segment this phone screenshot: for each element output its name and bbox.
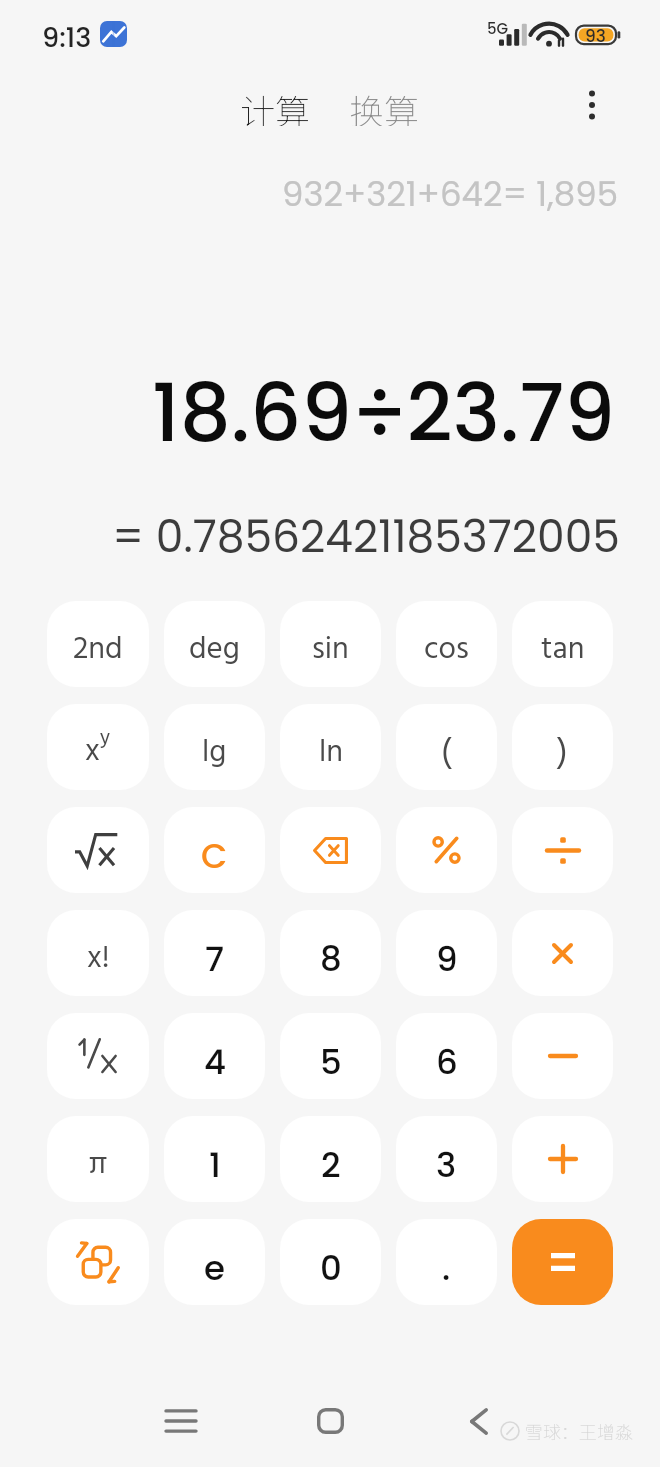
staticText: π: [89, 1140, 108, 1190]
button[interactable]: Square root: [47, 807, 149, 893]
button[interactable]: 6: [396, 1013, 497, 1099]
button[interactable]: Random: [47, 1219, 149, 1305]
button[interactable]: 9: [396, 910, 497, 996]
button[interactable]: 计算: [235, 76, 316, 134]
button[interactable]: More options: [568, 81, 616, 129]
staticText: (: [441, 726, 452, 780]
staticText: 1: [209, 1141, 221, 1189]
button[interactable]: Multiply: [512, 910, 613, 996]
staticText: 2nd: [73, 625, 123, 675]
staticText: 93: [585, 24, 606, 48]
button[interactable]: ): [512, 704, 613, 790]
button[interactable]: cos: [396, 601, 497, 687]
staticText: cos: [424, 625, 469, 675]
button[interactable]: (: [396, 704, 497, 790]
staticText: deg: [189, 625, 240, 675]
button[interactable]: Percent: [396, 807, 497, 893]
staticText: 雪球：王增淼: [525, 1418, 633, 1444]
button[interactable]: Clear: [164, 807, 265, 893]
button[interactable]: Delete: [280, 807, 381, 893]
button[interactable]: Reciprocal: [47, 1013, 149, 1099]
staticText: 换算: [349, 84, 420, 126]
button[interactable]: 5: [280, 1013, 381, 1099]
staticText: 3: [436, 1141, 457, 1189]
button[interactable]: Divide: [512, 807, 613, 893]
button[interactable]: 4: [164, 1013, 265, 1099]
button[interactable]: Minus: [512, 1013, 613, 1099]
button[interactable]: Recent apps: [141, 1381, 221, 1461]
staticText: .: [442, 1244, 451, 1292]
staticText: 7: [205, 935, 225, 983]
staticText: 932+321+642= 1,895: [0, 170, 618, 218]
button[interactable]: deg: [164, 601, 265, 687]
button[interactable]: π: [47, 1116, 149, 1202]
button[interactable]: 换算: [344, 76, 425, 134]
staticText: 5G: [487, 18, 509, 39]
button[interactable]: 3: [396, 1116, 497, 1202]
staticText: sin: [312, 625, 349, 675]
button[interactable]: 2nd: [47, 601, 149, 687]
staticText: 2: [321, 1141, 341, 1189]
button[interactable]: Equals: [512, 1219, 613, 1305]
button[interactable]: sin: [280, 601, 381, 687]
staticText: 9:13: [42, 19, 92, 57]
button[interactable]: e: [164, 1219, 265, 1305]
staticText: 9: [436, 935, 458, 983]
staticText: ln: [319, 728, 343, 778]
staticText: 0: [320, 1244, 342, 1292]
button[interactable]: Plus: [512, 1116, 613, 1202]
staticText: 18.69÷23.79: [0, 357, 615, 469]
button[interactable]: Home: [290, 1381, 370, 1461]
staticText: C: [201, 832, 228, 880]
button[interactable]: .: [396, 1219, 497, 1305]
staticText: 8: [320, 935, 342, 983]
button[interactable]: 0: [280, 1219, 381, 1305]
button[interactable]: lg: [164, 704, 265, 790]
staticText: y: [100, 722, 111, 755]
button[interactable]: x: [47, 704, 149, 790]
staticText: 4: [204, 1038, 226, 1086]
button[interactable]: 2: [280, 1116, 381, 1202]
button[interactable]: 7: [164, 910, 265, 996]
staticText: 6: [436, 1038, 458, 1086]
button[interactable]: 1: [164, 1116, 265, 1202]
button[interactable]: Back: [439, 1381, 519, 1461]
button[interactable]: 8: [280, 910, 381, 996]
button[interactable]: ln: [280, 704, 381, 790]
staticText: 5: [320, 1038, 342, 1086]
staticText: ): [557, 726, 568, 780]
button[interactable]: tan: [512, 601, 613, 687]
staticText: e: [204, 1244, 225, 1292]
staticText: = 0.78562421185372005: [0, 506, 620, 568]
staticText: x!: [87, 934, 110, 984]
staticText: tan: [541, 625, 585, 675]
staticText: 计算: [240, 84, 311, 126]
staticText: x: [85, 727, 100, 777]
button[interactable]: x!: [47, 910, 149, 996]
staticText: lg: [202, 728, 227, 778]
